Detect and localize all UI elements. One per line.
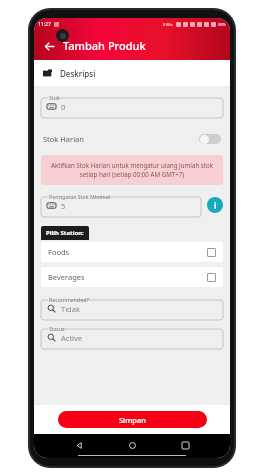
staticText: Simpan [119,415,146,425]
staticText: Deskripsi [60,68,96,79]
staticText: Pilih Station: [46,229,84,237]
staticText: Recommended? [49,296,89,303]
button[interactable]: Back [71,437,87,453]
button[interactable]: Simpan [58,411,207,428]
button[interactable]: Back [38,35,60,57]
staticText: Active [61,333,83,343]
staticText: Aktifkan Stok Harian untuk mengatur ulan… [47,161,217,179]
button[interactable]: Foods [41,242,223,262]
staticText: 0 B/s [163,22,173,27]
staticText: Beverages [48,272,85,282]
staticText: Tambah Produk [63,38,146,53]
staticText: i [214,200,217,211]
button[interactable]: Recents [177,437,193,453]
staticText: 5 [61,201,66,211]
button[interactable]: Deskripsi [34,60,230,86]
staticText: 0 [61,102,66,112]
staticText: Peringatan Stok Minimal [49,193,111,200]
button[interactable]: Stok Harian [34,127,230,151]
button[interactable]: Home [124,437,140,453]
button[interactable]: Beverages [41,267,223,287]
staticText: Foods [48,247,70,257]
staticText: 58% [218,22,226,27]
button[interactable]: Info [207,197,223,213]
staticText: Stok [49,94,60,101]
staticText: 11:27 [38,21,51,28]
staticText: Stok Harian [43,134,84,144]
staticText: Status [49,325,65,332]
staticText: Tidak [61,304,80,314]
